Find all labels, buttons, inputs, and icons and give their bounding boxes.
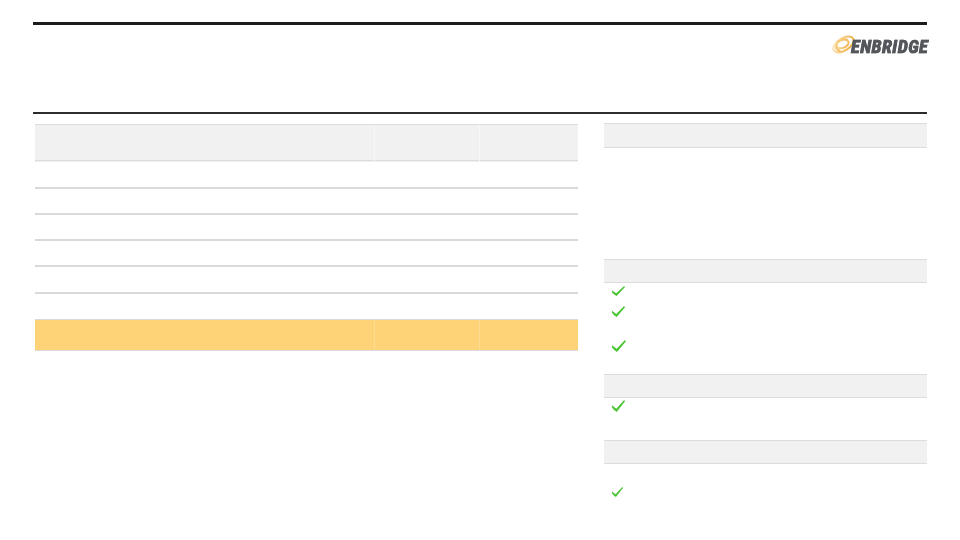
button[interactable]: Section heading 2 xyxy=(604,259,927,283)
button[interactable]: Completed item xyxy=(606,483,927,501)
button[interactable]: Completed item xyxy=(606,302,928,321)
button[interactable]: Completed item xyxy=(606,396,927,416)
button[interactable]: Table row 5 xyxy=(35,266,578,293)
button[interactable]: Completed item xyxy=(606,282,928,300)
button[interactable]: Section heading 1 xyxy=(604,123,927,148)
button[interactable]: Table row 3 xyxy=(35,213,578,239)
button[interactable]: Table row 4 xyxy=(35,239,578,266)
button[interactable]: Table row 6 xyxy=(35,293,578,320)
button[interactable]: Section heading 4 xyxy=(604,440,927,464)
button[interactable]: Table row 2 xyxy=(35,187,578,213)
button[interactable]: Table header row xyxy=(35,124,578,162)
button[interactable]: Completed item xyxy=(606,336,928,356)
button[interactable]: Section heading 3 xyxy=(604,374,927,398)
staticText: ENBRIDGE xyxy=(851,36,929,58)
button[interactable]: Enbridge logo xyxy=(834,33,930,57)
staticText: ENBRIDGE xyxy=(851,36,929,58)
